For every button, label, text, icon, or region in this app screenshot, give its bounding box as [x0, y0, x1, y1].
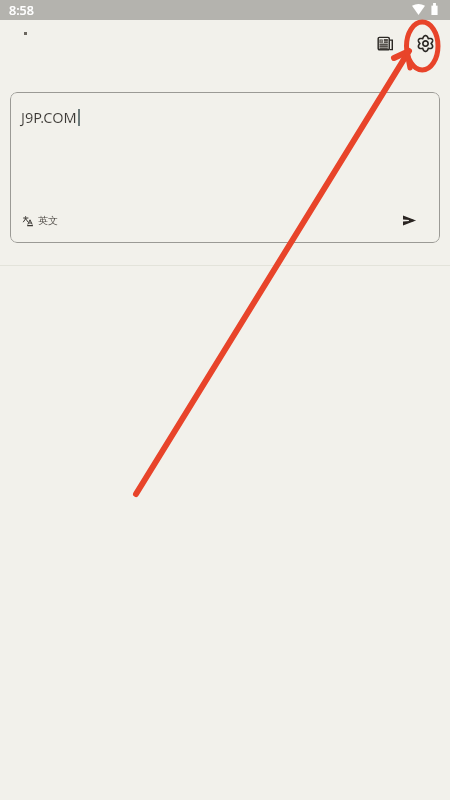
button[interactable]: Send: [397, 208, 421, 232]
staticText: 英文: [38, 214, 58, 227]
button[interactable]: J9P.COM: [10, 92, 440, 243]
staticText: J9P.COM: [21, 107, 77, 127]
button[interactable]: 英文: [23, 214, 58, 227]
button[interactable]: Settings: [407, 25, 443, 61]
staticText: 8:58: [9, 2, 34, 19]
button[interactable]: Articles: [367, 25, 403, 61]
